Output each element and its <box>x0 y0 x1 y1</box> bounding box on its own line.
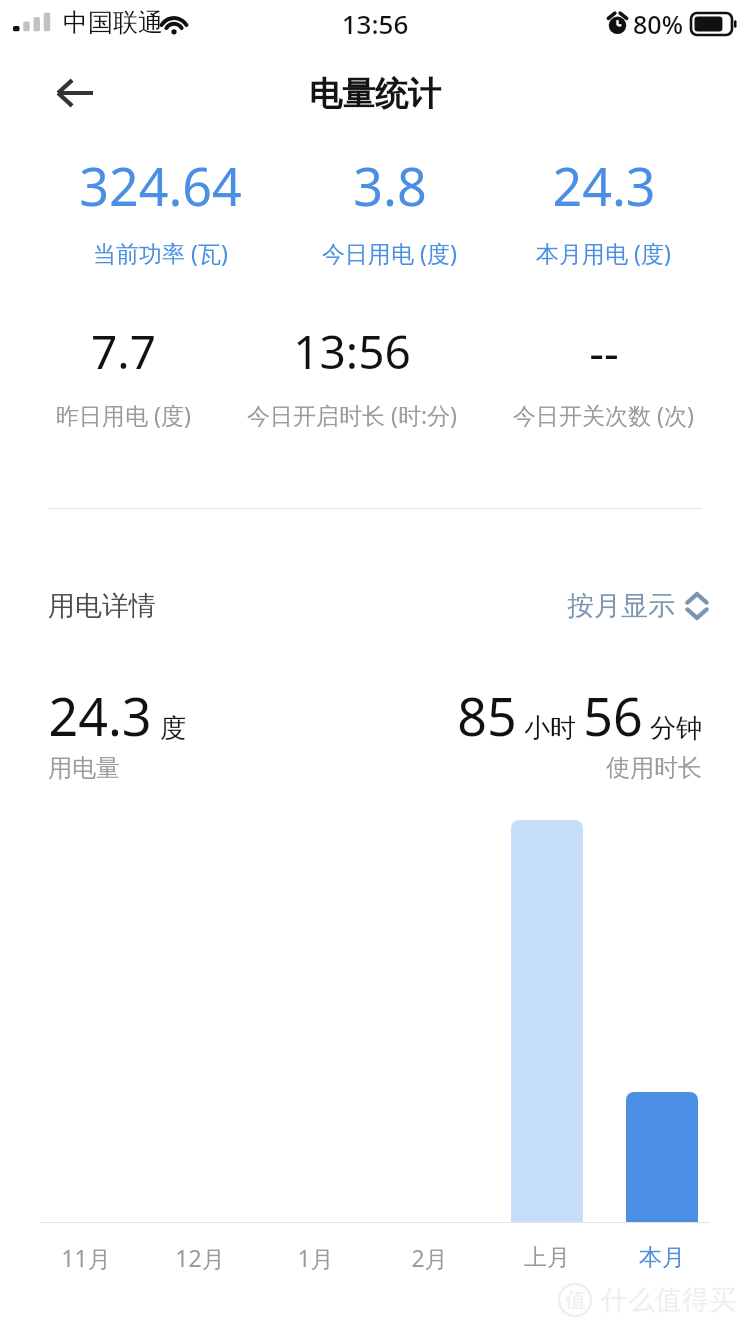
staticText: 11月 <box>61 1242 111 1273</box>
button[interactable]: 2月 <box>384 1234 474 1280</box>
staticText: 13:56 <box>293 320 411 383</box>
button[interactable]: 13:56 <box>247 320 457 430</box>
staticText: 2月 <box>411 1242 448 1273</box>
staticText: 分钟 <box>650 712 702 745</box>
staticText: 本月用电 (度) <box>536 237 671 268</box>
staticText: 今日开启时长 (时:分) <box>247 399 457 430</box>
button[interactable]: -- <box>513 320 694 430</box>
staticText: 使用时长 <box>606 753 702 783</box>
staticText: 56 <box>583 680 643 751</box>
staticText: 用电量 <box>48 753 120 783</box>
staticText: 小时 <box>524 712 576 745</box>
staticText: -- <box>589 320 619 383</box>
staticText: 当前功率 (瓦) <box>93 237 228 268</box>
staticText: 7.7 <box>91 320 156 383</box>
staticText: 13:56 <box>0 6 750 41</box>
staticText: 昨日用电 (度) <box>56 399 191 430</box>
button[interactable]: 3.8 <box>322 150 457 268</box>
button[interactable] <box>626 1092 698 1222</box>
staticText: 电量统计 <box>0 73 750 115</box>
staticText: 24.3 <box>552 150 656 221</box>
staticText: 85 <box>457 680 517 751</box>
staticText: 1月 <box>297 1242 334 1273</box>
staticText: 度 <box>160 712 186 745</box>
staticText: 12月 <box>175 1242 225 1273</box>
button[interactable]: Back <box>44 62 106 124</box>
button[interactable]: 11月 <box>41 1234 131 1280</box>
staticText: 用电详情 <box>48 589 156 623</box>
staticText: 上月 <box>524 1243 570 1272</box>
button[interactable]: 324.64 <box>79 150 242 268</box>
staticText: 今日开关次数 (次) <box>513 399 694 430</box>
staticText: 80% <box>633 7 683 41</box>
button[interactable]: 7.7 <box>56 320 191 430</box>
staticText: 值 <box>565 1287 586 1313</box>
button[interactable]: 按月显示 <box>567 589 708 623</box>
button[interactable]: 上月 <box>502 1234 592 1280</box>
button[interactable]: 12月 <box>155 1234 245 1280</box>
staticText: 本月 <box>639 1243 685 1272</box>
button[interactable]: 本月 <box>617 1234 707 1280</box>
staticText: 什么值得买 <box>601 1283 736 1317</box>
staticText: 中国联通 <box>63 7 163 38</box>
staticText: 今日用电 (度) <box>322 237 457 268</box>
staticText: 324.64 <box>79 150 242 221</box>
staticText: 按月显示 <box>567 589 675 623</box>
button[interactable]: 24.3 <box>536 150 671 268</box>
staticText: 24.3 <box>48 680 152 751</box>
staticText: 3.8 <box>353 150 427 221</box>
button[interactable]: 1月 <box>270 1234 360 1280</box>
